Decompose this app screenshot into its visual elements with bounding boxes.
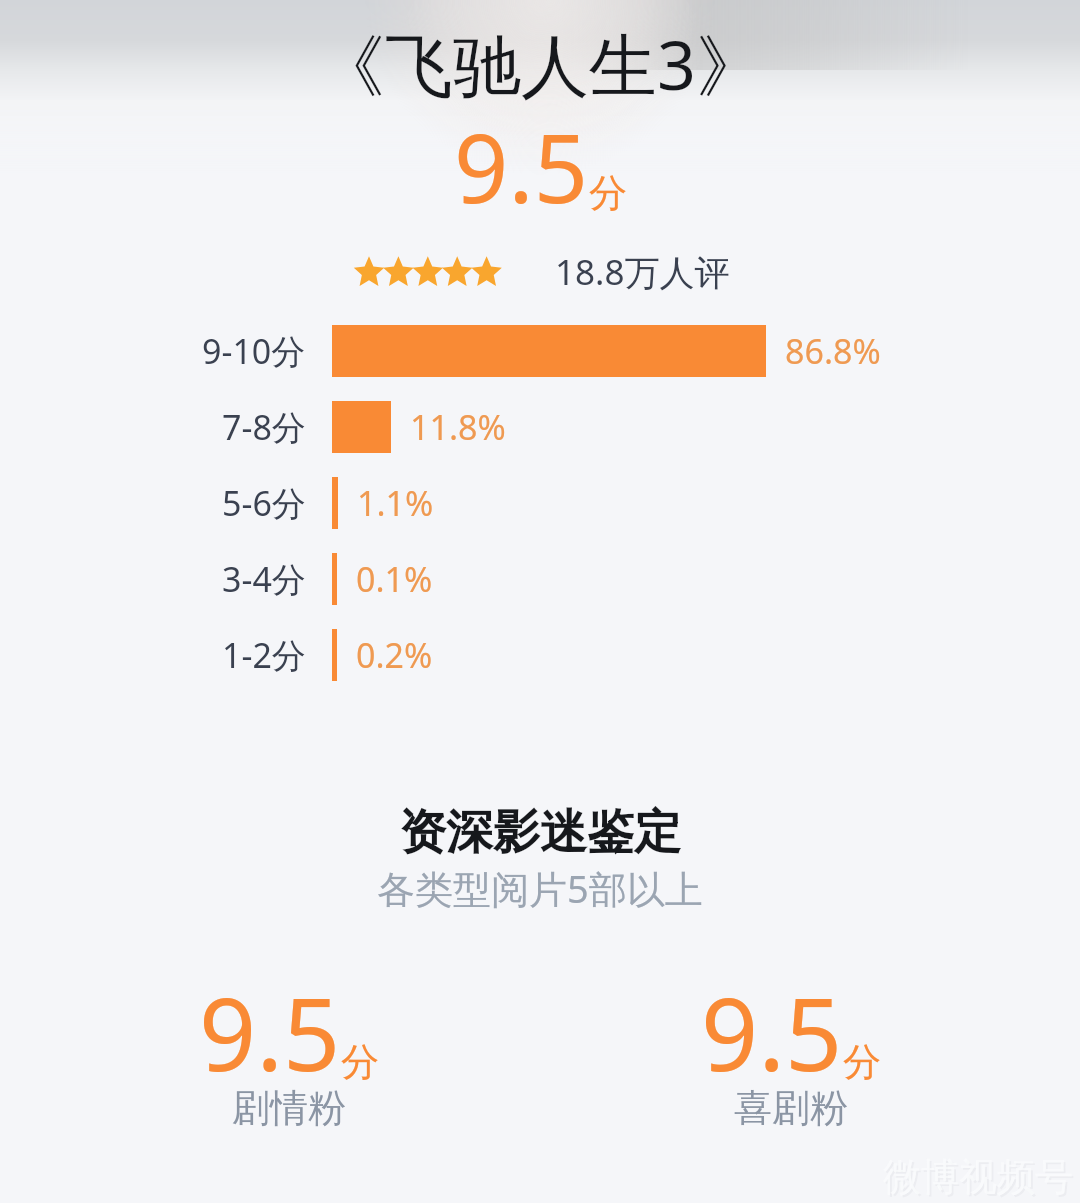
staticText: 86.8% bbox=[785, 328, 881, 374]
staticText: 5-6分 bbox=[222, 480, 306, 526]
staticText: 1-2分 bbox=[222, 632, 306, 678]
button[interactable]: 9.5 bbox=[540, 964, 1042, 1148]
button[interactable]: 1-2分 bbox=[0, 629, 1080, 681]
staticText: 18.8万人评 bbox=[555, 248, 730, 296]
staticText: 各类型阅片5部以上 bbox=[377, 862, 703, 914]
staticText: 分 bbox=[341, 1038, 379, 1086]
staticText: 9-10分 bbox=[202, 328, 306, 374]
staticText: 1.1% bbox=[357, 480, 434, 526]
staticText: 0.2% bbox=[356, 632, 433, 678]
staticText: 11.8% bbox=[410, 404, 506, 450]
staticText: 剧情粉 bbox=[232, 1084, 346, 1132]
staticText: 资深影迷鉴定 bbox=[399, 803, 681, 862]
staticText: 分 bbox=[589, 169, 627, 217]
staticText: 喜剧粉 bbox=[734, 1084, 848, 1132]
staticText: 9.5 bbox=[199, 964, 341, 1100]
button[interactable]: 3-4分 bbox=[0, 553, 1080, 605]
staticText: 9.5 bbox=[454, 101, 589, 230]
staticText: 《飞驰人生3》 bbox=[317, 17, 764, 110]
button[interactable]: 9-10分 bbox=[0, 325, 1080, 377]
staticText: 分 bbox=[843, 1038, 881, 1086]
button[interactable]: 9.5 bbox=[38, 964, 540, 1148]
staticText: 3-4分 bbox=[222, 556, 306, 602]
staticText: 9.5 bbox=[701, 964, 843, 1100]
staticText: 0.1% bbox=[356, 556, 433, 602]
button[interactable]: 5-6分 bbox=[0, 477, 1080, 529]
staticText: 微博视频号 bbox=[883, 1153, 1073, 1201]
button[interactable]: 5 star rating bbox=[353, 257, 503, 288]
staticText: 7-8分 bbox=[222, 404, 306, 450]
staticText: 微博视频号 bbox=[885, 1155, 1075, 1203]
button[interactable]: 7-8分 bbox=[0, 401, 1080, 453]
